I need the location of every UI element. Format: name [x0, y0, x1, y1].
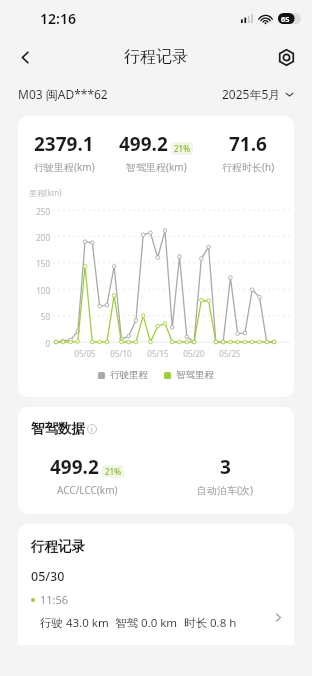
staticText: 2379.1: [34, 131, 94, 157]
staticText: 250: [18, 206, 50, 217]
staticText: 行程记录: [124, 47, 188, 67]
staticText: i: [91, 425, 93, 434]
staticText: 21%: [105, 466, 121, 477]
button[interactable]: Settings: [269, 40, 303, 74]
staticText: 12:16: [40, 9, 76, 28]
button[interactable]: Back: [8, 40, 42, 74]
staticText: 05/10: [107, 348, 135, 359]
button[interactable]: 11:56: [18, 592, 294, 631]
staticText: 11:56: [40, 592, 69, 607]
button[interactable]: 行驶里程: [98, 369, 148, 381]
staticText: ACC/LCC(km): [57, 483, 118, 497]
staticText: 行驶里程: [110, 369, 148, 381]
staticText: 05/15: [144, 348, 172, 359]
staticText: 智驾数据: [31, 420, 85, 437]
staticText: 3: [220, 454, 231, 480]
button[interactable]: Info: [87, 424, 97, 434]
staticText: 21%: [174, 143, 190, 154]
staticText: 行驶里程(km): [34, 160, 95, 174]
staticText: 100: [18, 285, 50, 296]
staticText: M03 闽AD***62: [18, 86, 108, 102]
button[interactable]: M03 闽AD***62: [18, 86, 108, 102]
staticText: 499.2: [50, 454, 99, 480]
staticText: 行驶 43.0 km: [40, 615, 109, 631]
staticText: 71.6: [229, 131, 267, 157]
staticText: 时长 0.8 h: [184, 615, 237, 631]
staticText: 499.2: [119, 131, 168, 157]
staticText: 0: [18, 338, 50, 349]
button[interactable]: 2025年5月: [222, 86, 294, 102]
staticText: 200: [18, 232, 50, 243]
staticText: 自动泊车(次): [197, 483, 253, 497]
staticText: 05/25: [216, 348, 244, 359]
staticText: 2025年5月: [222, 86, 281, 102]
staticText: 05/30: [31, 568, 65, 585]
button[interactable]: 智驾里程: [164, 369, 214, 381]
staticText: 行程时长(h): [222, 160, 275, 174]
staticText: 智驾 0.0 km: [115, 615, 178, 631]
staticText: 50: [18, 311, 50, 322]
staticText: 05/05: [71, 348, 99, 359]
staticText: 行程记录: [31, 538, 85, 555]
staticText: 智驾里程: [176, 369, 214, 381]
staticText: 里程(km): [29, 187, 62, 198]
staticText: 05/20: [180, 348, 208, 359]
staticText: 150: [18, 258, 50, 269]
staticText: 65: [281, 14, 290, 24]
staticText: 智驾里程(km): [126, 160, 187, 174]
